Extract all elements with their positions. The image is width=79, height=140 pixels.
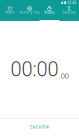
button[interactable]: ZAČAŤOK xyxy=(0,119,79,140)
staticText: Stopky xyxy=(44,10,55,14)
staticText: 22:45 xyxy=(67,0,76,5)
button[interactable]: Alarm xyxy=(0,5,20,21)
staticText: Alarm xyxy=(5,10,14,14)
button[interactable]: Časovač xyxy=(59,5,79,21)
staticText: Časovač xyxy=(62,10,76,14)
staticText: .00 xyxy=(58,71,68,80)
staticText: 00:00 xyxy=(10,58,58,81)
button[interactable]: Svetový čas xyxy=(20,5,40,21)
staticText: ZAČAŤOK xyxy=(29,125,49,130)
button[interactable]: Stopky xyxy=(39,5,59,21)
staticText: Svetový čas xyxy=(20,10,40,14)
